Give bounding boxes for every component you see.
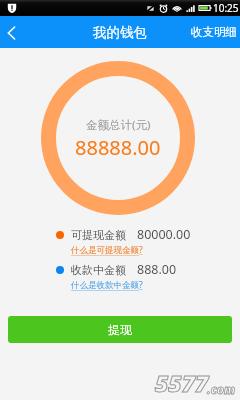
staticText: 我的钱包 [93, 24, 147, 41]
staticText: 什么是收款中金额? [71, 279, 143, 291]
staticText: .com [207, 381, 236, 397]
staticText: 80000.00 [137, 226, 191, 243]
staticText: 10:25 [213, 1, 239, 15]
button[interactable]: 提现 [8, 316, 232, 343]
staticText: 金额总计(元) [86, 117, 151, 133]
staticText: 收款中金额 [71, 263, 126, 277]
button[interactable]: 可提现金额 [0, 225, 240, 260]
staticText: 5577 [155, 367, 209, 398]
staticText: 什么是可提现金额? [71, 244, 143, 256]
staticText: 888.00 [137, 261, 177, 278]
staticText: 88888.00 [75, 134, 161, 161]
staticText: 可提现金额 [71, 228, 126, 242]
staticText: 提现 [108, 322, 132, 337]
button[interactable]: 收款中金额 [0, 260, 240, 295]
button[interactable]: Back [0, 16, 24, 48]
staticText: 收支明细 [191, 25, 237, 39]
button[interactable]: 收支明细 [186, 16, 240, 48]
